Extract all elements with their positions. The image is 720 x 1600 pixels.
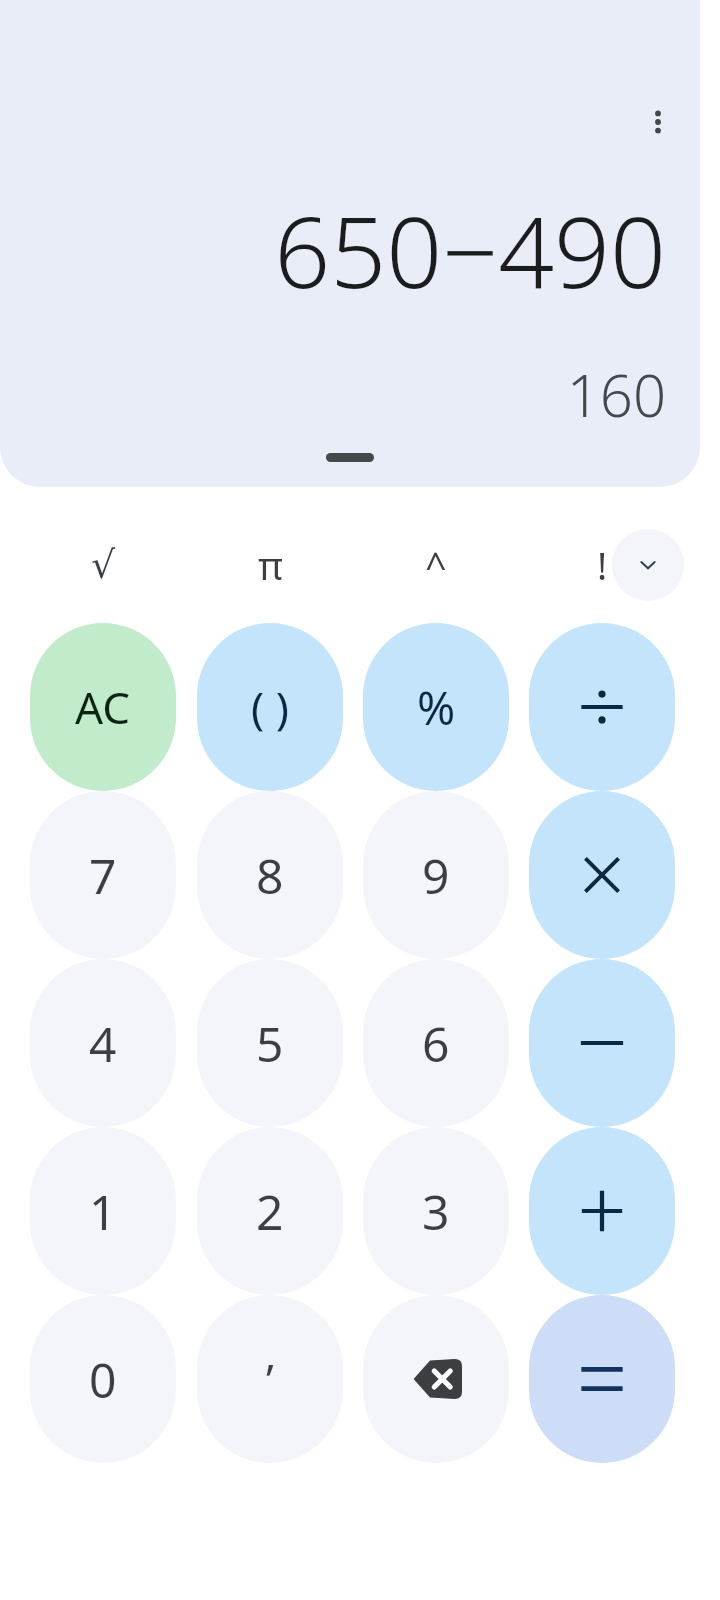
staticText: 8 bbox=[256, 843, 284, 908]
staticText: 2 bbox=[256, 1179, 284, 1244]
staticText: 6 bbox=[422, 1011, 450, 1076]
button[interactable]: 7 bbox=[30, 791, 176, 959]
button[interactable]: ^ bbox=[384, 519, 488, 611]
staticText: 5 bbox=[256, 1011, 284, 1076]
staticText: 9 bbox=[422, 843, 450, 908]
staticText: 650−490 bbox=[34, 183, 666, 316]
button[interactable]: AC bbox=[30, 623, 176, 791]
button[interactable]: Add bbox=[529, 1127, 675, 1295]
button[interactable]: 8 bbox=[197, 791, 343, 959]
staticText: 0 bbox=[89, 1347, 117, 1412]
button[interactable]: 4 bbox=[30, 959, 176, 1127]
button[interactable]: ! bbox=[550, 519, 654, 611]
button[interactable]: Equals bbox=[529, 1295, 675, 1463]
staticText: % bbox=[417, 676, 456, 739]
button[interactable]: ( ) bbox=[197, 623, 343, 791]
staticText: 3 bbox=[422, 1179, 450, 1244]
button[interactable]: More options bbox=[624, 88, 692, 156]
button[interactable]: 5 bbox=[197, 959, 343, 1127]
button[interactable]: √ bbox=[51, 519, 155, 611]
button[interactable]: 1 bbox=[30, 1127, 176, 1295]
staticText: 7 bbox=[89, 843, 117, 908]
staticText: √ bbox=[91, 543, 116, 587]
staticText: ( ) bbox=[251, 677, 289, 737]
staticText: π bbox=[258, 539, 283, 591]
button[interactable]: Backspace bbox=[363, 1295, 509, 1463]
button[interactable]: ’ bbox=[197, 1295, 343, 1463]
staticText: ^ bbox=[425, 539, 447, 591]
button[interactable]: 0 bbox=[30, 1295, 176, 1463]
button[interactable]: Multiply bbox=[529, 791, 675, 959]
staticText: 1 bbox=[89, 1179, 117, 1244]
button[interactable]: 3 bbox=[363, 1127, 509, 1295]
staticText: ’ bbox=[266, 1349, 274, 1409]
button[interactable]: Divide bbox=[529, 623, 675, 791]
staticText: 160 bbox=[34, 355, 666, 434]
staticText: 4 bbox=[89, 1011, 117, 1076]
button[interactable]: 6 bbox=[363, 959, 509, 1127]
button[interactable]: Subtract bbox=[529, 959, 675, 1127]
staticText: ! bbox=[597, 539, 608, 591]
staticText: AC bbox=[75, 677, 131, 737]
button[interactable]: Expand functions bbox=[612, 529, 684, 601]
button[interactable]: Drag handle bbox=[300, 441, 400, 473]
button[interactable]: 9 bbox=[363, 791, 509, 959]
button[interactable]: % bbox=[363, 623, 509, 791]
button[interactable]: π bbox=[218, 519, 322, 611]
button[interactable]: 2 bbox=[197, 1127, 343, 1295]
